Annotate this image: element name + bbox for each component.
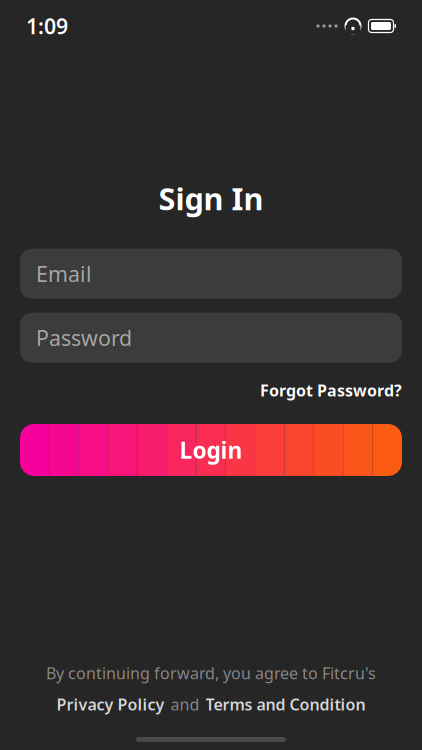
staticText: Privacy Policy [56,694,164,715]
staticText: Password [36,324,132,352]
staticText: Terms and Condition [205,694,365,715]
staticText: By continuing forward, you agree to Fitc… [46,662,376,684]
staticText: Sign In [158,178,263,219]
staticText: and [170,694,199,715]
staticText: 1:09 [26,12,68,40]
staticText: Forgot Password? [260,380,402,401]
button[interactable]: Forgot Password? [260,375,402,406]
button[interactable]: Privacy Policy [56,694,164,715]
button[interactable]: Terms and Condition [205,694,365,715]
button[interactable]: Login [0,424,422,476]
staticText: Email [36,260,92,288]
staticText: Login [179,435,242,465]
